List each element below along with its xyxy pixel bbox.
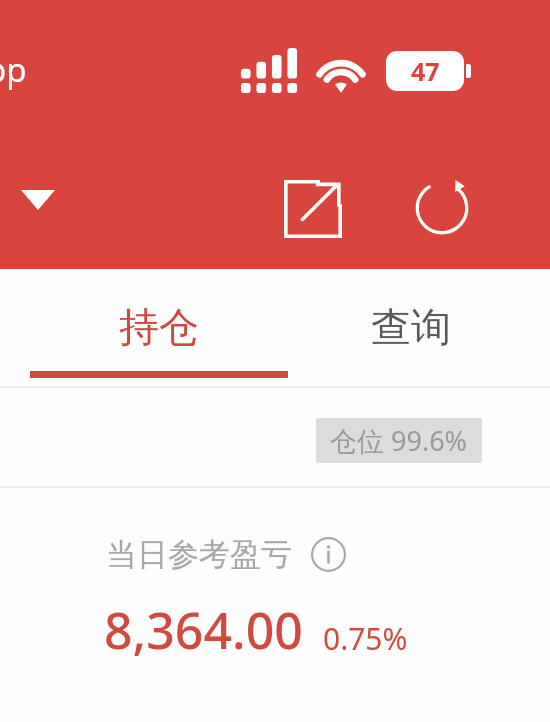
button[interactable]: Open external (276, 172, 350, 246)
staticText: 持仓 (119, 302, 199, 352)
staticText: 47 (411, 54, 440, 88)
button[interactable]: Info (308, 534, 348, 574)
button[interactable]: 持仓 (30, 269, 288, 388)
button[interactable]: 仓位 99.6% (316, 418, 482, 463)
button[interactable]: Select account (6, 168, 70, 232)
staticText: 当日参考盈亏 (106, 535, 292, 574)
staticText: pp (0, 47, 27, 92)
staticText: 8,364.00 (104, 596, 303, 664)
staticText: 0.75% (323, 618, 408, 659)
button[interactable]: Refresh (404, 170, 480, 246)
staticText: 仓位 99.6% (330, 422, 468, 459)
button[interactable]: 查询 (288, 269, 534, 388)
staticText: 查询 (371, 302, 451, 352)
